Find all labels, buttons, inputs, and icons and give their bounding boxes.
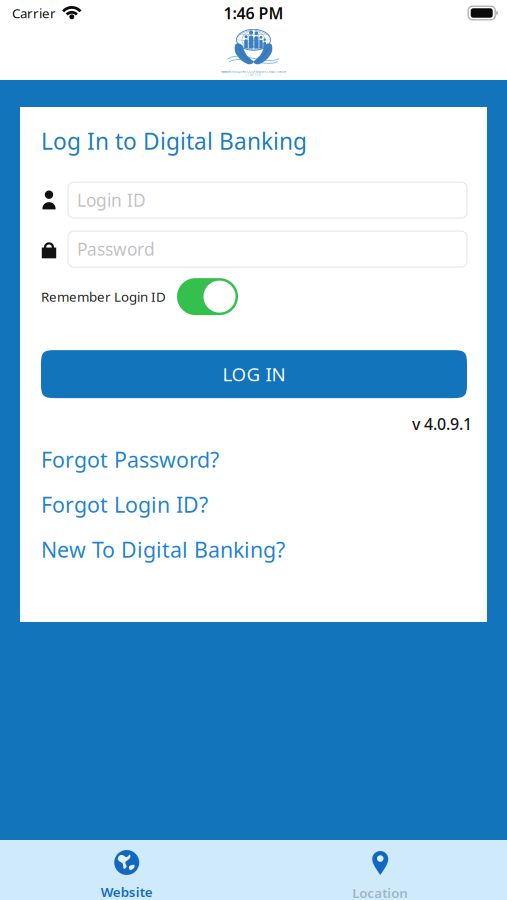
staticText: Log In to Digital Banking (41, 126, 307, 156)
staticText: Password (77, 238, 155, 261)
button[interactable]: Location (253, 840, 507, 900)
staticText: Website (101, 883, 153, 900)
staticText: 1:46 PM (223, 2, 283, 24)
button[interactable]: Website (0, 840, 253, 900)
staticText: LOG IN (222, 362, 285, 386)
staticText: Forgot Login ID? (41, 490, 208, 518)
button[interactable]: Forgot Password? (41, 444, 467, 474)
staticText: Login ID (77, 189, 146, 212)
staticText: v 4.0.9.1 (412, 413, 472, 434)
staticText: New To Digital Banking? (41, 535, 285, 563)
staticText: Location (352, 884, 408, 900)
staticText: Remember Login ID (41, 288, 166, 305)
staticText: Forgot Password? (41, 445, 219, 473)
button[interactable]: LOG IN (41, 350, 467, 398)
staticText: Carrier (12, 4, 56, 22)
button[interactable]: Remember Login ID (177, 278, 238, 315)
staticText: L I M I T E D (246, 73, 261, 77)
button[interactable]: New To Digital Banking? (41, 534, 467, 564)
staticText: MEMBERS BUILDING CO-OPERATIVE CREDIT UNI… (221, 70, 286, 73)
button[interactable]: Forgot Login ID? (41, 489, 467, 519)
